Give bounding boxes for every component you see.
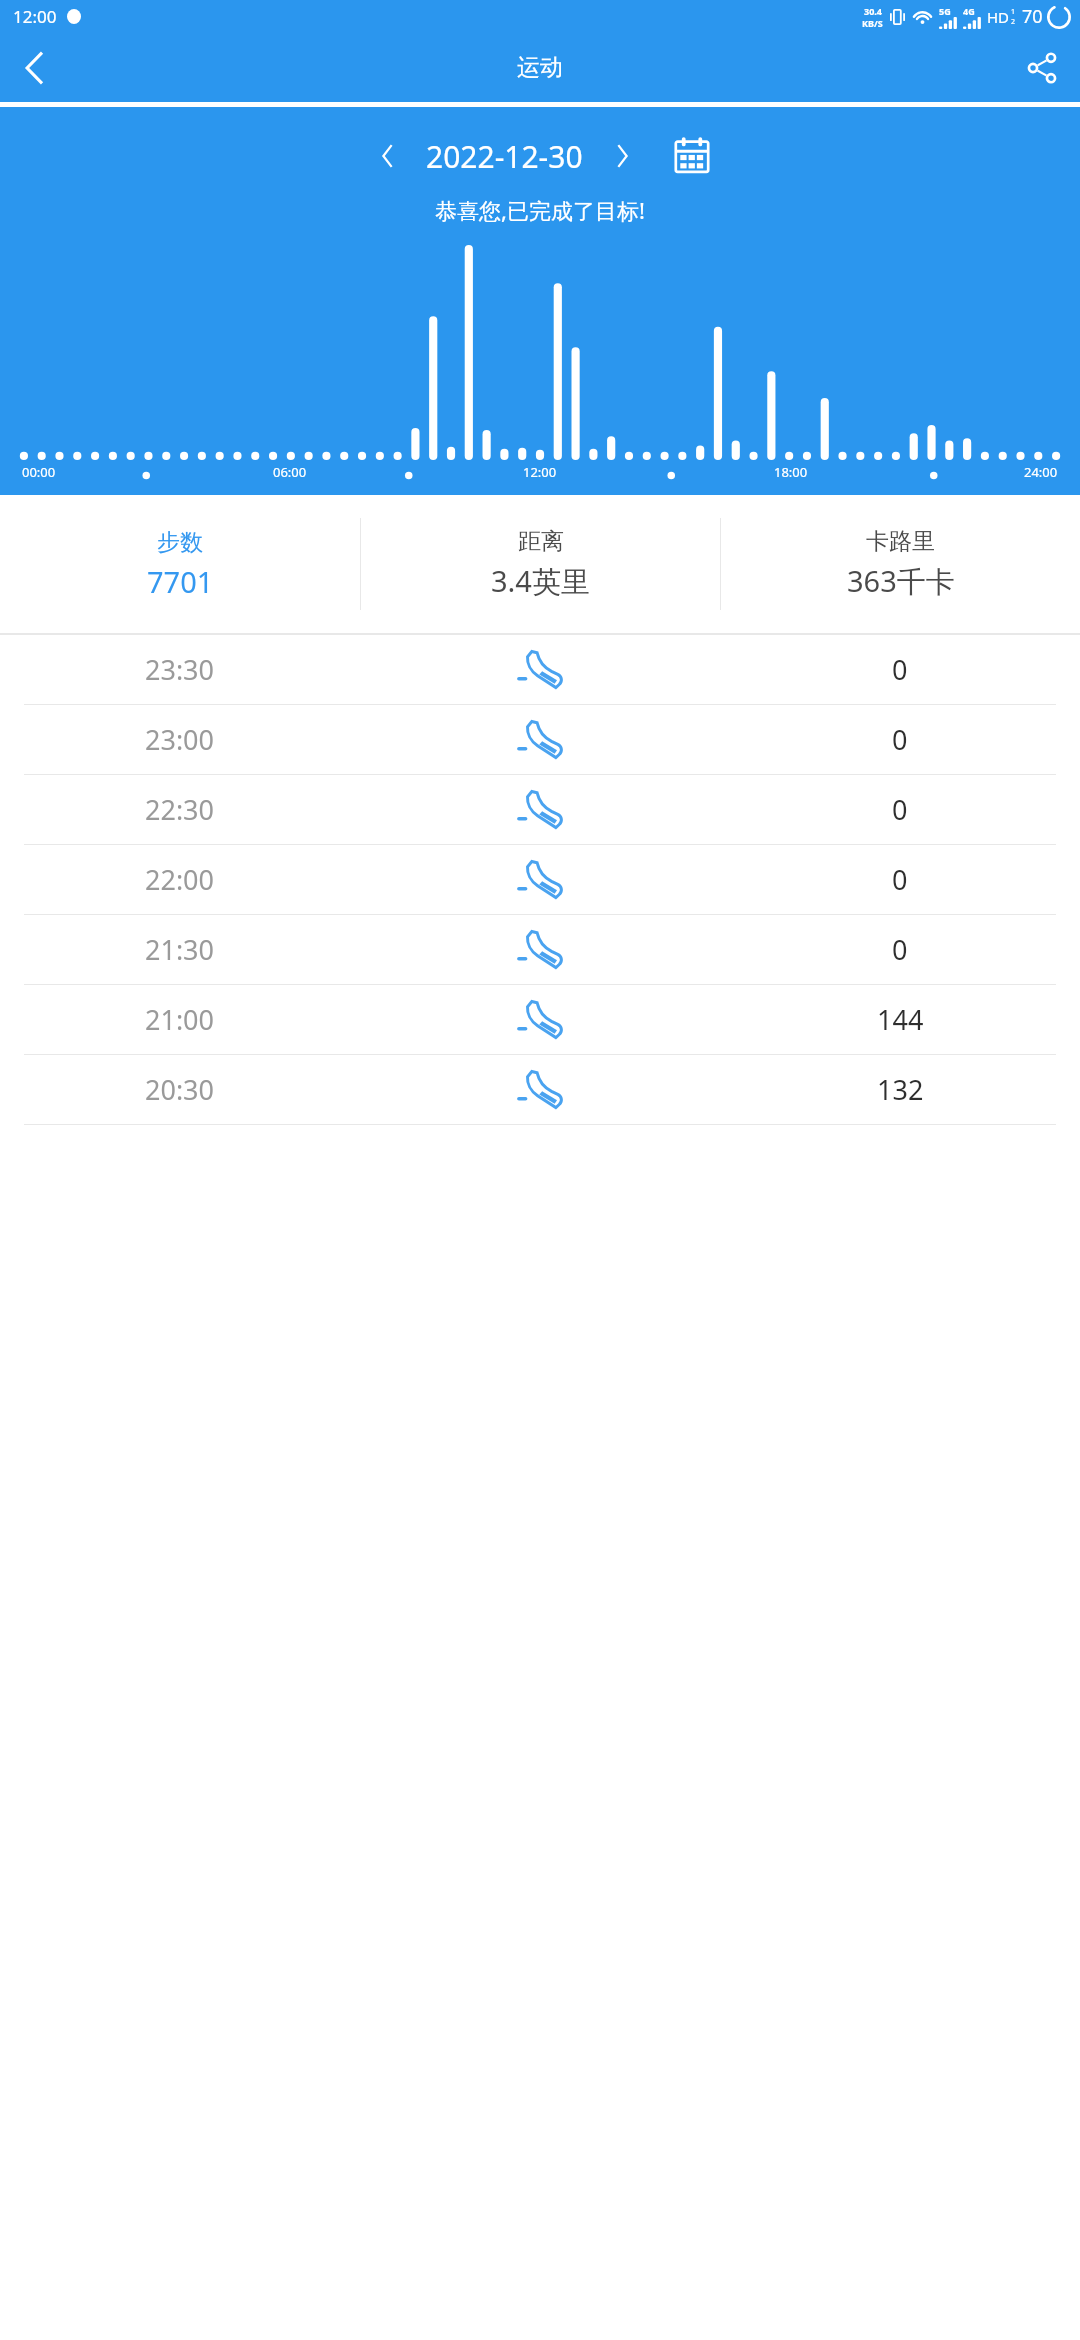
staticText: 21:30	[145, 931, 215, 968]
button[interactable]: Next day	[597, 131, 647, 181]
button[interactable]: 卡路里	[721, 495, 1080, 633]
button[interactable]: 21:30	[0, 915, 1080, 984]
staticText: 22:30	[145, 791, 215, 828]
button[interactable]: 22:30	[0, 775, 1080, 844]
staticText: 21:00	[145, 1001, 215, 1038]
button[interactable]: 步数	[0, 495, 360, 633]
staticText: 70	[1022, 4, 1043, 29]
staticText: 363千卡	[847, 561, 955, 601]
staticText: 24:00	[1024, 463, 1058, 481]
staticText: 0	[892, 861, 908, 898]
staticText: 12:00	[523, 463, 557, 481]
button[interactable]: 21:00	[0, 985, 1080, 1054]
button[interactable]: 22:00	[0, 845, 1080, 914]
staticText: HD	[987, 7, 1010, 27]
staticText: 1	[1011, 7, 1016, 17]
staticText: 20:30	[145, 1071, 215, 1108]
staticText: 00:00	[22, 463, 56, 481]
staticText: 132	[877, 1071, 924, 1108]
staticText: 4G	[963, 5, 975, 17]
staticText: 恭喜您,已完成了目标!	[435, 195, 645, 225]
staticText: 23:00	[145, 721, 215, 758]
staticText: 30.4	[864, 5, 882, 17]
button[interactable]: 23:00	[0, 705, 1080, 774]
staticText: 144	[877, 1001, 924, 1038]
staticText: 运动	[517, 53, 563, 82]
staticText: 步数	[157, 528, 203, 557]
button[interactable]: Calendar	[665, 129, 719, 183]
button[interactable]: Previous day	[362, 131, 412, 181]
staticText: 0	[892, 651, 908, 688]
button[interactable]: Share	[1004, 33, 1080, 102]
staticText: 06:00	[273, 463, 307, 481]
staticText: 3.4英里	[491, 561, 590, 601]
staticText: KB/S	[862, 17, 883, 29]
button[interactable]: Back	[0, 33, 70, 102]
staticText: 5G	[939, 5, 951, 17]
staticText: 距离	[518, 527, 564, 556]
staticText: 12:00	[13, 5, 57, 28]
staticText: 22:00	[145, 861, 215, 898]
staticText: 0	[892, 931, 908, 968]
staticText: 0	[892, 721, 908, 758]
staticText: 23:30	[145, 651, 215, 688]
staticText: 18:00	[774, 463, 808, 481]
button[interactable]: 距离	[361, 495, 720, 633]
staticText: 卡路里	[866, 527, 935, 556]
staticText: 7701	[147, 562, 214, 601]
button[interactable]: 20:30	[0, 1055, 1080, 1124]
button[interactable]: 23:30	[0, 635, 1080, 704]
staticText: 2	[1011, 17, 1016, 27]
staticText: 2022-12-30	[426, 136, 583, 177]
staticText: 0	[892, 791, 908, 828]
